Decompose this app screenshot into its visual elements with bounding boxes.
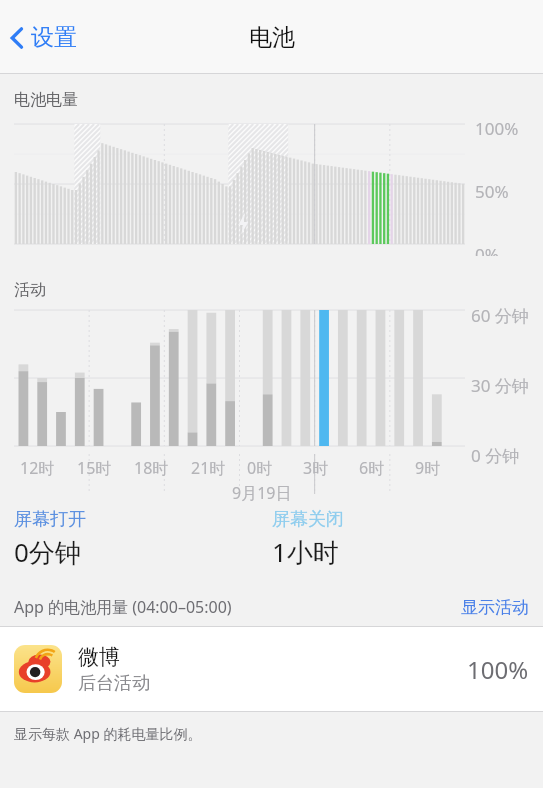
staticText: 微博	[78, 644, 120, 670]
staticText: 21时	[191, 457, 226, 479]
staticText: 12时	[20, 457, 55, 479]
staticText: 设置	[31, 23, 77, 52]
staticText: 30 分钟	[471, 374, 529, 397]
button[interactable]: 设置	[6, 17, 81, 58]
staticText: 18时	[134, 457, 169, 479]
staticText: 1小时	[272, 534, 339, 570]
staticText: 屏幕关闭	[272, 508, 344, 531]
staticText: 60 分钟	[471, 304, 529, 327]
staticText: 显示活动	[461, 597, 529, 618]
staticText: 0分钟	[14, 534, 81, 570]
staticText: 0时	[247, 457, 273, 479]
staticText: 100%	[467, 653, 529, 686]
staticText: 100%	[475, 117, 519, 140]
staticText: 电池	[249, 23, 295, 52]
button[interactable]: 微博	[0, 627, 543, 711]
button[interactable]: 显示活动	[461, 597, 529, 618]
staticText: 活动	[14, 280, 46, 300]
staticText: 0 分钟	[471, 444, 520, 467]
staticText: 显示每款 App 的耗电量比例。	[14, 724, 202, 743]
staticText: 6时	[359, 457, 385, 479]
staticText: 15时	[77, 457, 112, 479]
staticText: 3时	[303, 457, 329, 479]
staticText: 9月19日	[232, 482, 292, 504]
staticText: 0%	[475, 243, 499, 256]
staticText: 屏幕打开	[14, 508, 86, 531]
staticText: 后台活动	[78, 672, 150, 695]
staticText: 电池电量	[14, 90, 78, 110]
staticText: 50%	[475, 180, 509, 203]
staticText: 9时	[415, 457, 441, 479]
staticText: App 的电池用量 (04:00–05:00)	[14, 596, 232, 618]
